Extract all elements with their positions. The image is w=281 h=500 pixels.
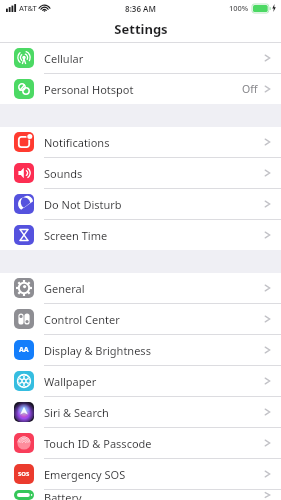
other: Siri & Search	[14, 402, 34, 422]
button[interactable]: Cellular	[0, 43, 281, 74]
other: Control Center	[14, 309, 34, 329]
other: Personal Hotspot	[14, 79, 34, 99]
staticText: Battery	[44, 490, 264, 500]
button[interactable]: Wallpaper	[0, 366, 281, 397]
button[interactable]: Personal Hotspot	[0, 74, 281, 104]
other: General	[14, 278, 34, 298]
staticText: Display & Brightness	[44, 343, 264, 358]
staticText: Screen Time	[44, 228, 264, 243]
staticText: Control Center	[44, 312, 264, 327]
other: Touch ID & Passcode	[14, 433, 34, 453]
other: Wallpaper	[14, 371, 34, 391]
staticText: Touch ID & Passcode	[44, 436, 264, 451]
other: Do Not Disturb	[14, 194, 34, 214]
staticText: General	[44, 281, 264, 296]
other: Notifications	[14, 132, 34, 152]
other: Sounds	[14, 163, 34, 183]
button[interactable]: General	[0, 273, 281, 304]
staticText: 100%	[229, 3, 249, 13]
staticText: Sounds	[44, 166, 264, 181]
staticText: Notifications	[44, 135, 264, 150]
other: Screen Time	[14, 225, 34, 245]
button[interactable]: Emergency SOS	[0, 459, 281, 490]
button[interactable]: Touch ID & Passcode	[0, 428, 281, 459]
button[interactable]: Battery	[0, 490, 281, 500]
staticText: Do Not Disturb	[44, 197, 264, 212]
other: Emergency SOS	[14, 464, 34, 484]
button[interactable]: Screen Time	[0, 220, 281, 250]
other: Battery	[14, 490, 34, 500]
staticText: Off	[242, 82, 258, 96]
staticText: AT&T	[19, 3, 37, 13]
staticText: Cellular	[44, 51, 264, 66]
staticText: Emergency SOS	[44, 467, 264, 482]
button[interactable]: Sounds	[0, 158, 281, 189]
button[interactable]: Display & Brightness	[0, 335, 281, 366]
button[interactable]: Notifications	[0, 127, 281, 158]
other: Display & Brightness	[14, 340, 34, 360]
staticText: Wallpaper	[44, 374, 264, 389]
button[interactable]: Control Center	[0, 304, 281, 335]
other: Cellular	[14, 48, 34, 68]
staticText: 8:36 AM	[125, 3, 156, 14]
staticText: AA	[19, 345, 29, 355]
staticText: Siri & Search	[44, 405, 264, 420]
staticText: SOS	[18, 470, 30, 478]
staticText: Settings	[114, 20, 168, 38]
button[interactable]: Do Not Disturb	[0, 189, 281, 220]
staticText: Personal Hotspot	[44, 82, 242, 97]
button[interactable]: Siri & Search	[0, 397, 281, 428]
